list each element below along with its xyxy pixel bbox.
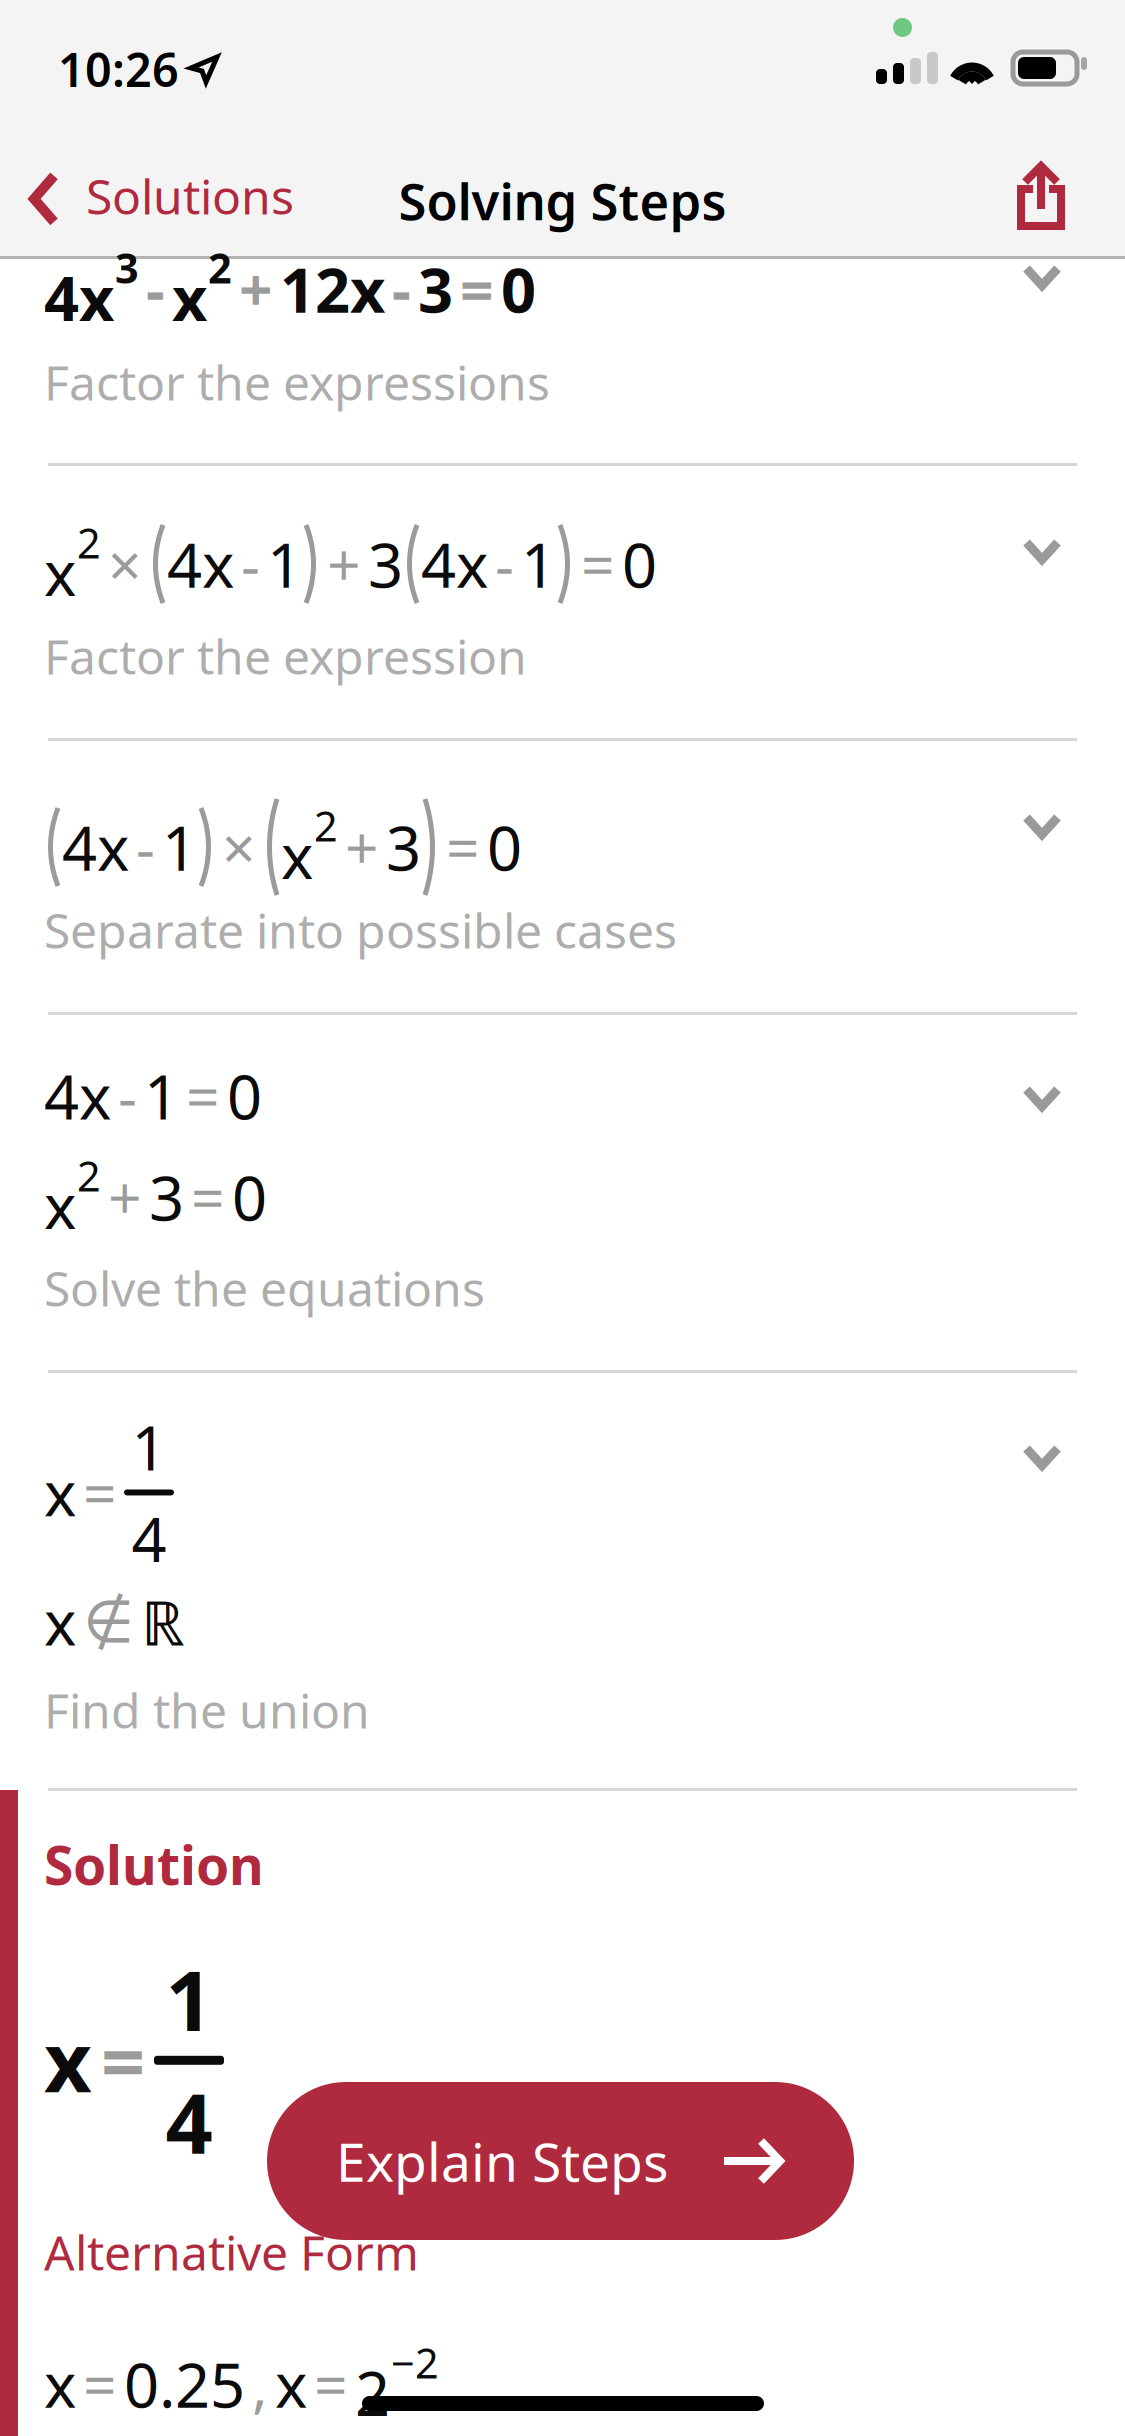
staticText: x <box>44 532 76 613</box>
staticText: 3 <box>115 240 139 295</box>
staticText: 0 <box>501 248 536 330</box>
staticText: = <box>191 1158 225 1236</box>
button[interactable]: Solutions <box>16 150 306 248</box>
staticText: 3 <box>368 523 403 605</box>
staticText: 2 <box>77 1148 101 1203</box>
button[interactable]: Share <box>1005 149 1077 243</box>
staticText: x <box>281 815 313 896</box>
staticText: - <box>118 1057 137 1135</box>
staticText: Alternative Form <box>44 2220 419 2284</box>
staticText: 0 <box>487 806 522 888</box>
staticText: - <box>146 250 165 328</box>
staticText: - <box>392 250 411 328</box>
staticText: 12x <box>280 248 385 330</box>
staticText: = <box>446 808 480 886</box>
staticText: 2 <box>314 798 338 853</box>
staticText: ℝ <box>141 1581 185 1662</box>
staticText: 4x <box>167 523 234 605</box>
staticText: - <box>241 525 260 603</box>
staticText: x <box>275 2343 307 2425</box>
staticText: 4x <box>62 806 129 888</box>
staticText: 4 <box>131 1497 166 1579</box>
staticText: = <box>460 250 494 328</box>
staticText: 1 <box>165 1944 212 2054</box>
staticText: 1 <box>131 1406 166 1487</box>
staticText: + <box>327 525 361 603</box>
staticText: = <box>314 2345 348 2423</box>
staticText: 1 <box>267 523 302 605</box>
staticText: Factor the expression <box>44 624 527 688</box>
staticText: - <box>136 808 155 886</box>
staticText: x <box>44 2343 76 2425</box>
staticText: = <box>186 1057 220 1135</box>
staticText: 2 <box>77 515 101 570</box>
staticText: ∉ <box>83 1588 134 1655</box>
staticText: 1 <box>144 1055 179 1136</box>
staticText: x <box>44 1581 76 1662</box>
staticText: 3 <box>386 806 421 888</box>
staticText: + <box>345 808 379 886</box>
staticText: 4x <box>44 257 114 338</box>
button[interactable]: Explain Steps <box>267 2082 854 2240</box>
staticText: 1 <box>162 806 197 888</box>
staticText: = <box>83 2345 117 2423</box>
staticText: Explain Steps <box>336 2126 669 2196</box>
staticText: 3 <box>418 248 453 330</box>
staticText: × <box>108 525 142 603</box>
staticText: = <box>101 2009 145 2112</box>
staticText: + <box>239 250 273 328</box>
staticText: x <box>44 1165 76 1246</box>
staticText: Factor the expressions <box>44 350 550 414</box>
staticText: Solving Steps <box>398 167 726 234</box>
staticText: - <box>495 525 514 603</box>
staticText: Find the union <box>44 1678 370 1742</box>
staticText: Separate into possible cases <box>44 898 677 962</box>
staticText: 0.25 <box>124 2343 245 2425</box>
staticText: 4x <box>421 523 488 605</box>
staticText: 1 <box>521 523 556 605</box>
staticText: 10:26 <box>58 38 179 100</box>
staticText: 2 <box>208 240 232 295</box>
staticText: Solve the equations <box>44 1256 485 1320</box>
staticText: 3 <box>149 1156 184 1238</box>
staticText: = <box>83 1453 117 1531</box>
staticText: 0 <box>227 1055 262 1136</box>
staticText: 0 <box>622 523 657 605</box>
staticText: 4x <box>44 1055 111 1136</box>
staticText: + <box>108 1158 142 1236</box>
staticText: x <box>44 2005 92 2115</box>
staticText: x <box>172 257 207 338</box>
staticText: x <box>44 1452 76 1533</box>
staticText: × <box>222 808 256 886</box>
staticText: 2 <box>355 2352 390 2433</box>
staticText: 0 <box>232 1156 267 1238</box>
staticText: , <box>252 2345 268 2423</box>
staticText: −2 <box>391 2335 439 2390</box>
staticText: = <box>581 525 615 603</box>
staticText: Solutions <box>86 164 294 228</box>
staticText: Solution <box>44 1829 264 1900</box>
staticText: 4 <box>165 2067 212 2177</box>
